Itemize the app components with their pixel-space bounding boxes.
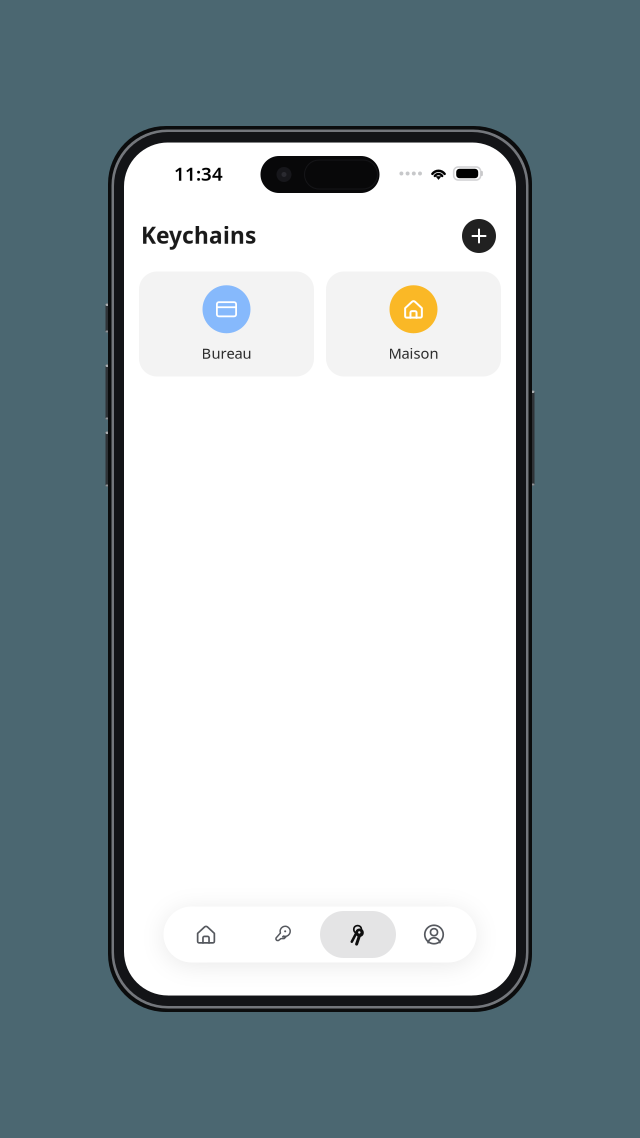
staticText: Maison — [388, 343, 438, 363]
staticText: 11:34 — [174, 161, 223, 186]
button[interactable]: Keys — [244, 911, 320, 958]
staticText: Keychains — [141, 220, 256, 250]
staticText: Bureau — [201, 343, 251, 363]
button[interactable]: Home — [168, 911, 244, 958]
button[interactable]: Keychains — [320, 911, 396, 958]
button[interactable]: Maison — [326, 271, 501, 376]
button[interactable]: Add keychain — [459, 219, 499, 259]
button[interactable]: Bureau — [139, 271, 314, 376]
button[interactable]: Profile — [396, 911, 472, 958]
